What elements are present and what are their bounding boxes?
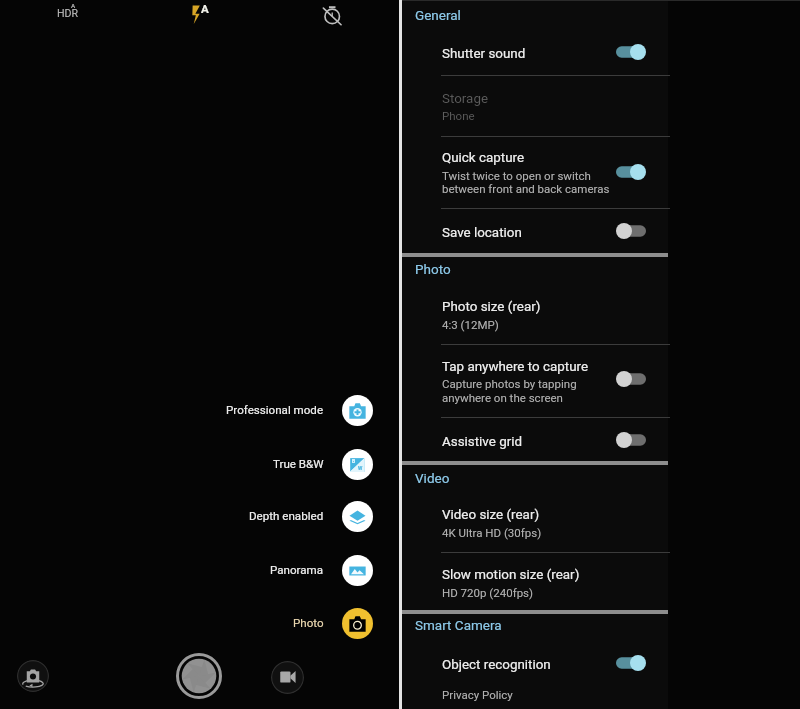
button[interactable]: Video mode <box>271 661 304 694</box>
button[interactable] <box>402 615 668 635</box>
staticText: Phone <box>442 109 475 122</box>
staticText: between front and back cameras <box>442 182 610 195</box>
button[interactable]: Flash auto <box>189 2 211 25</box>
button[interactable] <box>402 353 668 414</box>
button[interactable] <box>402 423 668 457</box>
staticText: Object recognition <box>442 657 551 673</box>
staticText: HDR <box>57 7 79 19</box>
staticText: Assistive grid <box>442 434 523 450</box>
staticText: Privacy Policy <box>442 688 513 701</box>
staticText: Professional mode <box>226 403 324 417</box>
staticText: True B&W <box>273 457 324 471</box>
staticText: HD 720p (240fps) <box>442 586 534 599</box>
staticText: B <box>352 458 356 464</box>
staticText: Panorama <box>270 563 324 577</box>
button[interactable] <box>441 683 670 703</box>
button[interactable] <box>402 145 668 205</box>
staticText: General <box>415 7 461 23</box>
button[interactable] <box>402 214 668 248</box>
staticText: Save location <box>442 225 522 241</box>
button[interactable] <box>402 35 668 69</box>
staticText: Tap anywhere to capture <box>442 359 589 375</box>
button[interactable]: Timer off <box>321 2 343 26</box>
button[interactable] <box>402 259 668 279</box>
button[interactable]: Shutter <box>175 652 223 700</box>
staticText: Depth enabled <box>249 509 324 523</box>
button[interactable]: True B&W <box>150 447 373 481</box>
staticText: Capture photos by tapping <box>442 377 577 390</box>
staticText: Twist twice to open or switch <box>442 169 591 182</box>
button[interactable]: Photo <box>150 606 373 640</box>
button[interactable] <box>402 559 668 605</box>
staticText: Photo <box>293 616 324 630</box>
staticText: Video size (rear) <box>442 507 540 523</box>
staticText: Shutter sound <box>442 46 526 62</box>
button[interactable]: Professional mode <box>150 393 373 427</box>
staticText: Slow motion size (rear) <box>442 567 580 583</box>
staticText: W <box>358 465 363 471</box>
button[interactable] <box>402 83 668 128</box>
button[interactable] <box>402 500 668 546</box>
button[interactable]: Switch camera <box>17 660 49 692</box>
staticText: A <box>71 2 76 9</box>
staticText: 4:3 (12MP) <box>442 318 499 331</box>
staticText: 4K Ultra HD (30fps) <box>442 526 542 539</box>
staticText: Storage <box>442 91 489 107</box>
button[interactable] <box>402 646 668 680</box>
button[interactable]: Panorama <box>150 553 373 587</box>
button[interactable] <box>402 468 668 488</box>
staticText: Quick capture <box>442 150 525 166</box>
staticText: anywhere on the screen <box>442 391 563 404</box>
staticText: Photo size (rear) <box>442 299 541 315</box>
button[interactable] <box>402 5 668 25</box>
button[interactable]: Depth enabled <box>150 499 373 533</box>
staticText: Photo <box>415 261 451 277</box>
button[interactable]: HDR auto <box>53 0 81 24</box>
staticText: Smart Camera <box>415 617 502 633</box>
staticText: A <box>201 2 209 15</box>
staticText: Video <box>415 470 450 486</box>
button[interactable] <box>402 291 668 337</box>
